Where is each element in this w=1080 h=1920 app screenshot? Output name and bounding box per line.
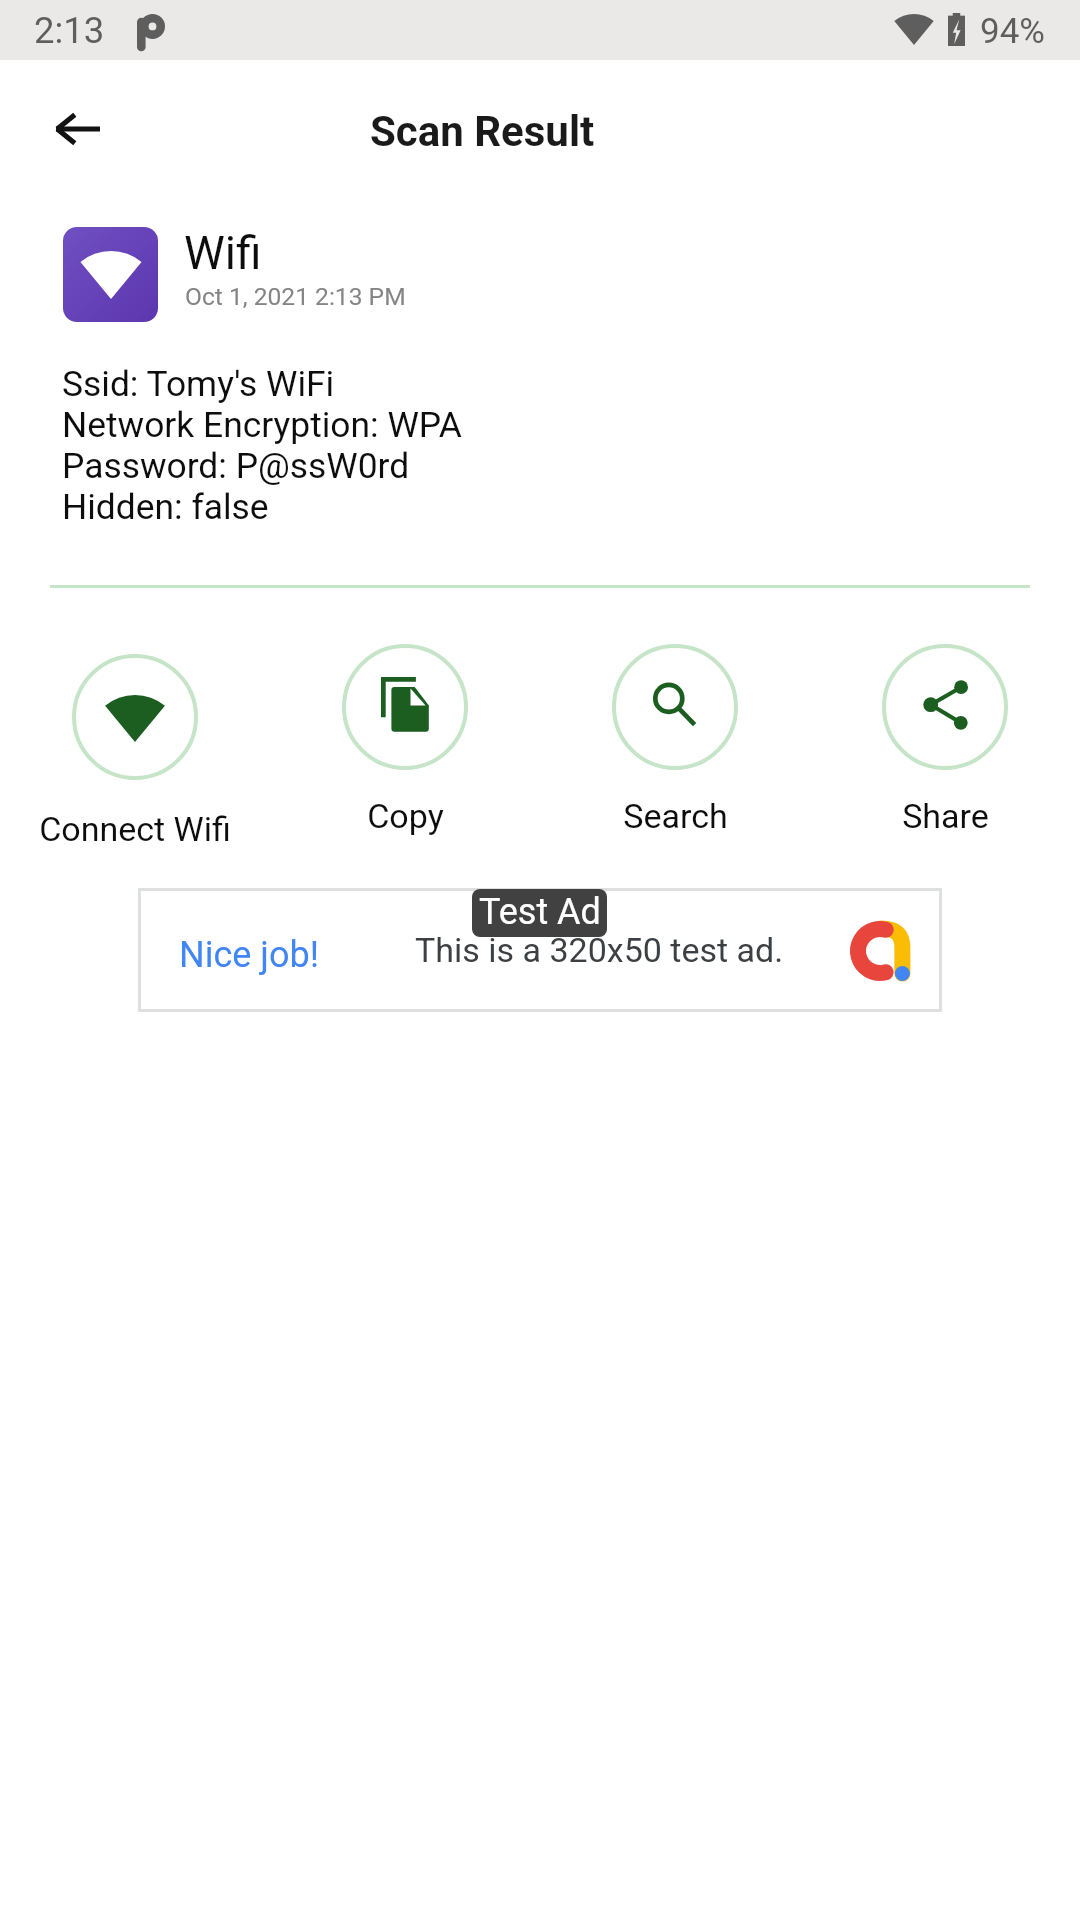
staticText: Hidden: false [62,487,269,528]
button[interactable]: Advertisement [138,888,942,1012]
staticText: Share [902,796,989,836]
staticText: Scan Result [370,107,595,156]
staticText: Oct 1, 2021 2:13 PM [185,282,406,311]
button[interactable]: Connect Wifi [0,654,270,849]
staticText: This is a 320x50 test ad. [415,930,784,970]
button[interactable]: Search [540,644,810,836]
staticText: Test Ad [479,891,601,933]
staticText: 94% [980,11,1045,52]
staticText: Network Encryption: WPA [62,405,462,446]
button[interactable]: Back [33,85,121,173]
staticText: Nice job! [179,934,319,976]
staticText: Ssid: Tomy's WiFi [62,364,335,405]
staticText: Wifi [184,226,262,280]
staticText: Search [623,796,728,836]
button[interactable]: Share [810,644,1080,836]
staticText: Copy [367,796,444,836]
staticText: 2:13 [34,9,105,52]
staticText: Password: P@ssW0rd [62,446,410,487]
button[interactable]: Copy [270,644,540,836]
staticText: Connect Wifi [39,809,231,849]
